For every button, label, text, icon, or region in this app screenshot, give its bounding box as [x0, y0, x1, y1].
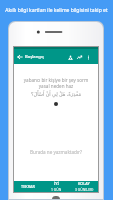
button[interactable]: TEKRAR [14, 181, 42, 192]
staticText: 1 GÜN [51, 187, 62, 192]
staticText: TEKRAR [21, 184, 35, 189]
staticText: İYİ [54, 181, 59, 186]
button[interactable]: İYİ [42, 181, 70, 192]
button[interactable]: KOLAY [70, 181, 98, 192]
staticText: Başlangıç [25, 54, 45, 60]
staticText: Akıllı bilgi kartları ile kelime bilgisi… [5, 7, 108, 14]
button[interactable]: Statistics [75, 50, 84, 64]
button[interactable]: Play audio [51, 99, 61, 109]
staticText: 3 GÜN(LER) [75, 187, 94, 192]
button[interactable]: More options [84, 50, 93, 64]
staticText: Burada ne yazmaktadır? [17, 149, 95, 155]
staticText: KOLAY [78, 181, 90, 186]
button[interactable]: Undo [66, 50, 75, 64]
staticText: مَعْذِرَةً، هَلْ لِي أَنْ أَسْأَلَ؟ [17, 91, 95, 98]
staticText: yabancı bir kişiye bir şey sorm yasal ne… [17, 77, 95, 89]
button[interactable]: Back [15, 50, 25, 64]
